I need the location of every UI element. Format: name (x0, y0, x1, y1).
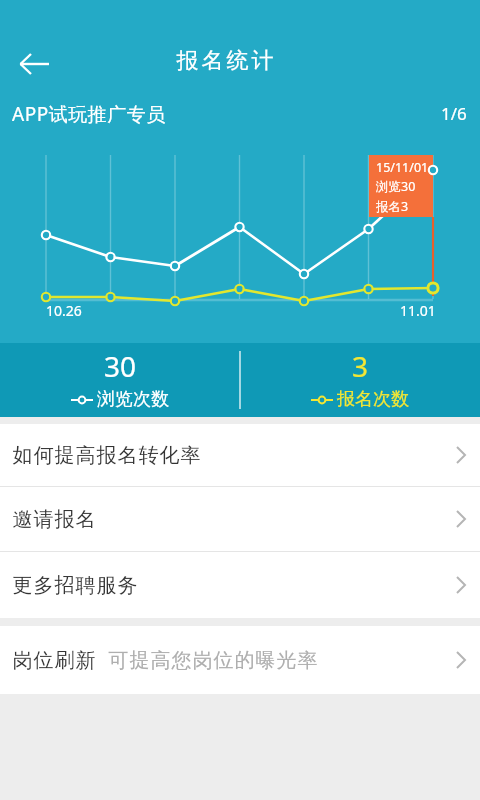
staticText: 30 (104, 347, 137, 385)
staticText: 11.01 (400, 301, 436, 320)
button[interactable]: 如何提高报名转化率 (0, 424, 480, 486)
button[interactable]: 3 (240, 343, 480, 417)
staticText: 更多招聘服务 (12, 573, 138, 598)
button[interactable]: 邀请报名 (0, 487, 480, 551)
staticText: 报名统计 (175, 47, 275, 75)
staticText: APP试玩推广专员 (12, 101, 166, 127)
staticText: 报名次数 (337, 388, 409, 411)
staticText: 邀请报名 (12, 507, 96, 532)
staticText: 10.26 (46, 301, 82, 320)
staticText: 可提高您岗位的曝光率 (108, 648, 318, 673)
button[interactable]: 30 (0, 343, 240, 417)
button[interactable] (10, 40, 58, 88)
staticText: 岗位刷新 (12, 648, 96, 673)
button[interactable]: 更多招聘服务 (0, 552, 480, 618)
button[interactable]: 岗位刷新 (0, 626, 480, 694)
staticText: 3 (352, 347, 369, 385)
staticText: 浏览次数 (97, 388, 169, 411)
staticText: 15/11/01 浏览30 报名3 (376, 159, 429, 215)
staticText: 1/6 (441, 102, 467, 125)
staticText: 如何提高报名转化率 (12, 443, 201, 468)
